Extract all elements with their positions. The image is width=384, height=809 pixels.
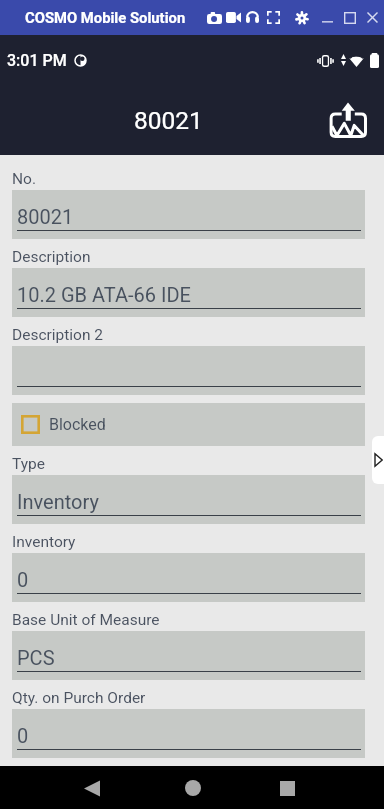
staticText: 0 xyxy=(17,568,29,591)
button[interactable]: Home xyxy=(173,768,213,808)
button[interactable]: Fullscreen xyxy=(263,0,283,35)
button[interactable]: Recent apps xyxy=(267,768,307,808)
staticText: 80021 xyxy=(134,106,203,135)
button[interactable]: Close xyxy=(362,0,382,35)
staticText: No. xyxy=(12,170,36,188)
staticText: Description xyxy=(12,248,91,266)
button[interactable]: Settings xyxy=(292,0,312,35)
staticText: 10.2 GB ATA-66 IDE xyxy=(17,283,191,306)
staticText: Qty. on Purch Order xyxy=(12,689,146,707)
staticText: Blocked xyxy=(49,415,106,434)
staticText: 0 xyxy=(17,724,29,747)
button[interactable]: Blocked xyxy=(12,403,365,446)
staticText: 80021 xyxy=(17,205,74,228)
staticText: Inventory xyxy=(12,533,76,551)
staticText: Inventory xyxy=(17,490,99,513)
staticText: 3:01 PM xyxy=(7,51,67,70)
button[interactable]: Minimize xyxy=(317,0,337,35)
button[interactable]: Take screenshot xyxy=(204,0,224,35)
button[interactable]: Back xyxy=(72,768,112,808)
button[interactable]: Maximize xyxy=(340,0,360,35)
button[interactable]: Upload image xyxy=(326,96,370,142)
button[interactable]: Record screen xyxy=(223,0,243,35)
staticText: Type xyxy=(12,455,45,473)
button[interactable]: Open side panel xyxy=(372,436,384,484)
button[interactable]: Audio xyxy=(242,0,262,35)
staticText: Base Unit of Measure xyxy=(12,611,160,629)
staticText: PCS xyxy=(17,646,55,669)
staticText: COSMO Mobile Solution xyxy=(25,9,186,26)
staticText: Description 2 xyxy=(12,326,104,344)
